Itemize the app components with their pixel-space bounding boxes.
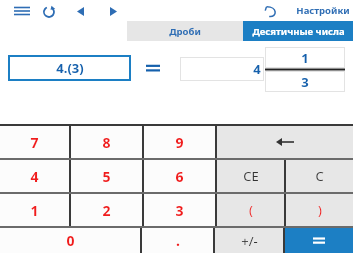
staticText: 5 [102, 167, 111, 186]
staticText: Десятичные числа [252, 25, 345, 38]
staticText: 6 [175, 167, 184, 186]
button[interactable]: Десятичные числа [243, 21, 353, 41]
staticText: 1 [30, 201, 39, 220]
staticText: 1 [301, 49, 309, 67]
staticText: 9 [175, 133, 184, 152]
button[interactable]: . [142, 228, 213, 253]
staticText: 8 [102, 133, 111, 152]
staticText: 4 [30, 167, 39, 186]
button[interactable]: 2 [71, 194, 142, 226]
staticText: 0 [66, 231, 75, 250]
button[interactable]: Backspace [217, 126, 353, 158]
button[interactable]: 5 [71, 160, 142, 192]
staticText: 3 [175, 201, 184, 220]
staticText: 7 [30, 133, 39, 152]
button[interactable]: 0 [0, 228, 140, 253]
staticText: +/- [241, 232, 258, 250]
button[interactable]: Next [105, 4, 121, 18]
button[interactable]: 7 [0, 126, 69, 158]
button[interactable]: 4 [0, 160, 69, 192]
button[interactable]: C [286, 160, 353, 192]
button[interactable]: CE [217, 160, 284, 192]
button[interactable]: Настройки [296, 0, 350, 20]
staticText: 2 [102, 201, 111, 220]
button[interactable]: Undo [262, 3, 280, 19]
button[interactable]: 3 [144, 194, 215, 226]
button[interactable]: Previous [72, 4, 88, 18]
staticText: 4 [253, 60, 261, 78]
button[interactable]: 8 [71, 126, 142, 158]
staticText: ( [249, 201, 253, 219]
button[interactable]: ( [217, 194, 284, 226]
staticText: CE [243, 167, 259, 185]
staticText: . [176, 231, 180, 250]
button[interactable] [285, 228, 353, 253]
button[interactable]: 1 [0, 194, 69, 226]
button[interactable]: 4.(3) [8, 55, 131, 81]
staticText: C [315, 167, 324, 185]
button[interactable]: +/- [215, 228, 283, 253]
staticText: ) [318, 201, 322, 219]
button[interactable]: 6 [144, 160, 215, 192]
button[interactable]: Menu [12, 4, 32, 18]
button[interactable]: Refresh [40, 3, 58, 21]
button[interactable]: 9 [144, 126, 215, 158]
staticText: Дроби [169, 25, 201, 38]
staticText: Настройки [296, 4, 350, 17]
button[interactable]: Дроби [127, 21, 243, 41]
staticText: 4.(3) [56, 59, 84, 77]
button[interactable]: ) [286, 194, 353, 226]
staticText: 3 [301, 73, 309, 91]
